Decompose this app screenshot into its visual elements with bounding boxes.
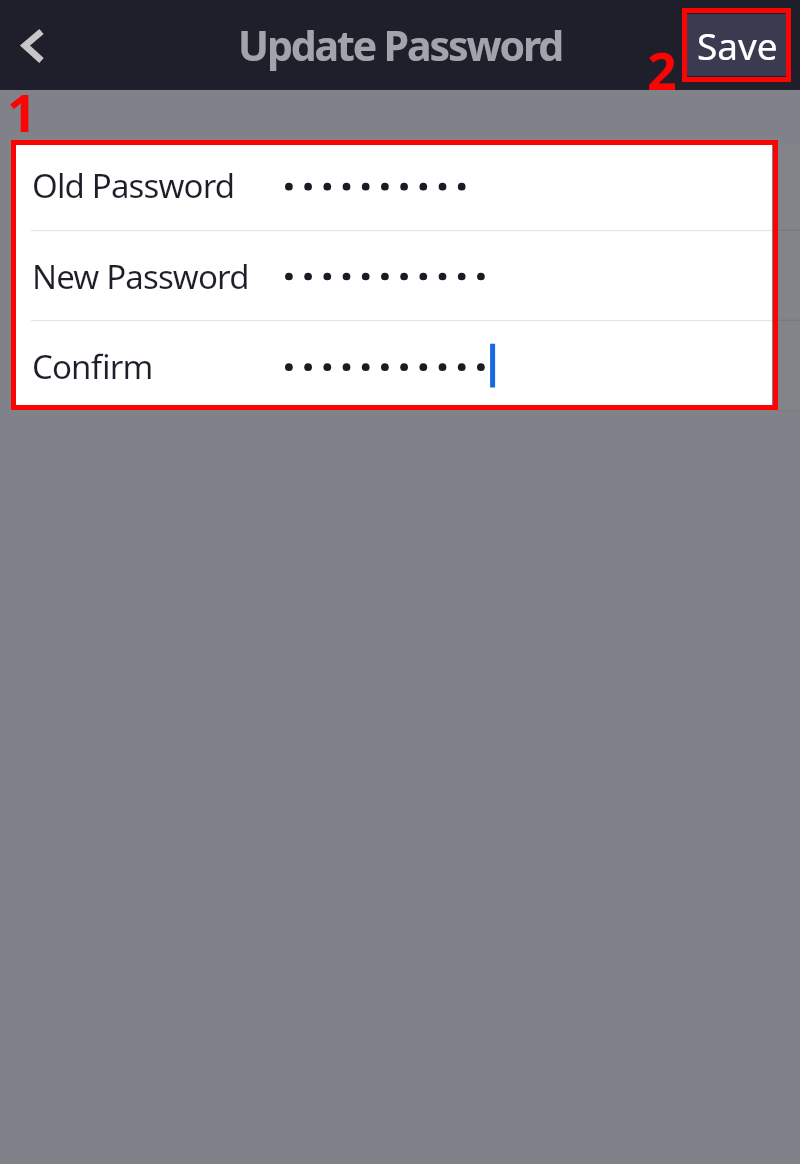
staticText: New Password	[32, 254, 249, 299]
staticText: Old Password	[32, 163, 235, 208]
staticText: Confirm	[32, 344, 153, 389]
button[interactable]: Save	[687, 14, 787, 76]
button[interactable]: Old Password	[16, 145, 772, 230]
button[interactable]: Confirm	[16, 321, 772, 405]
staticText: Update Password	[238, 17, 563, 73]
staticText: Save	[697, 20, 778, 70]
staticText: 2	[647, 34, 677, 105]
button[interactable]: New Password	[16, 231, 772, 320]
staticText: 1	[7, 76, 37, 147]
button[interactable]: Back	[0, 13, 64, 77]
